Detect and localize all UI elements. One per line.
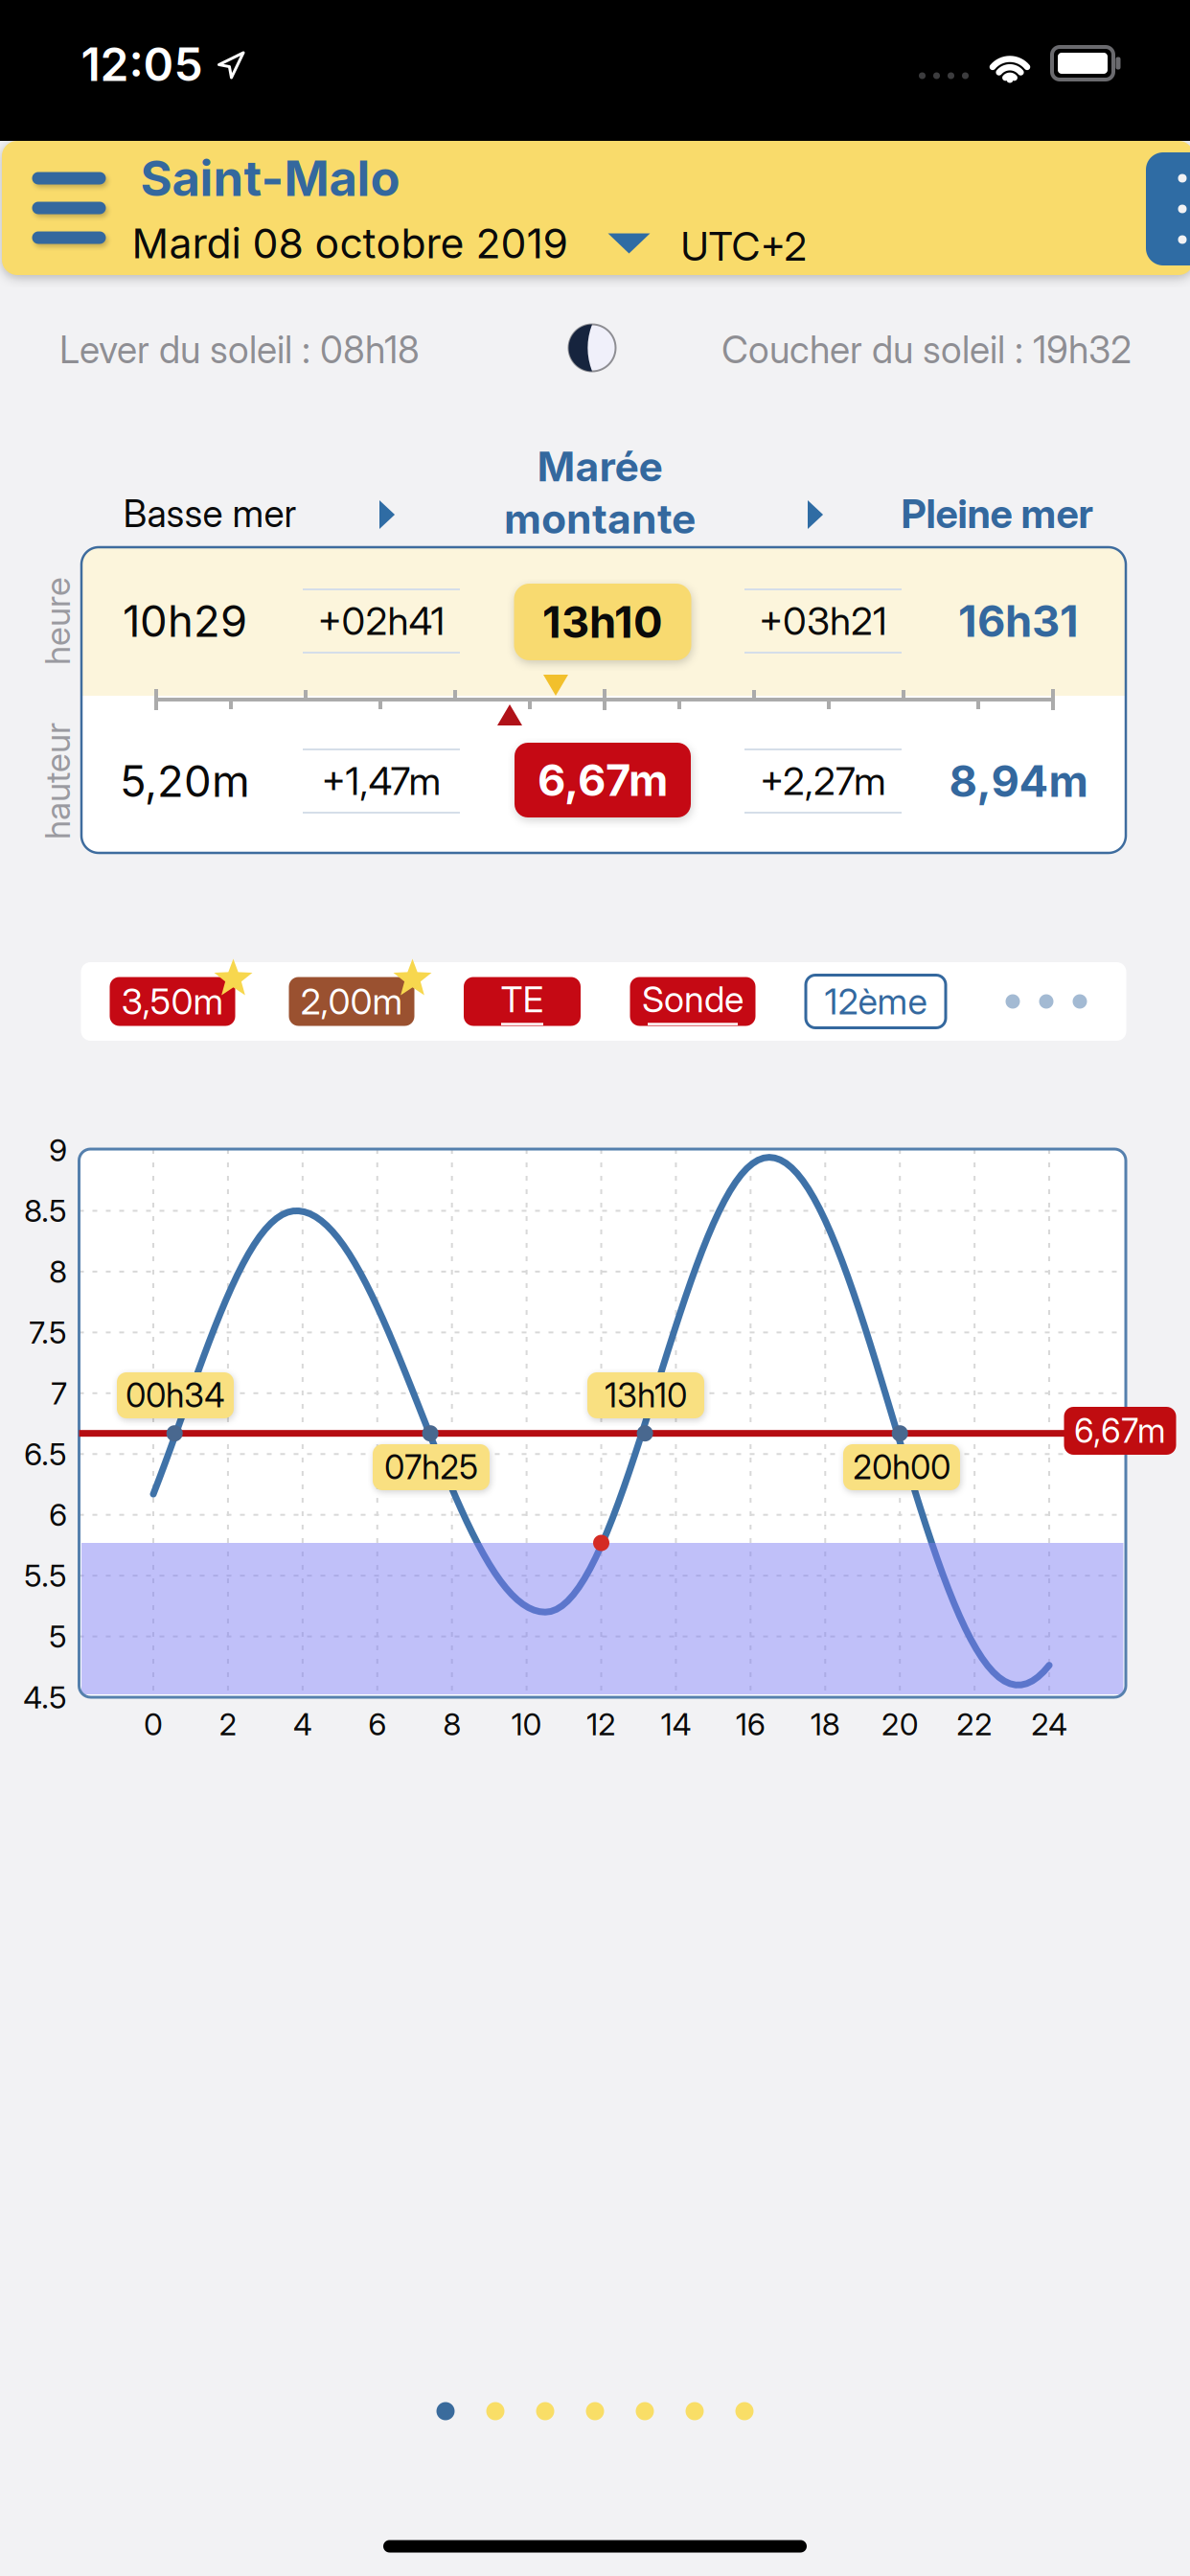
staticText: 24 xyxy=(1031,1705,1067,1743)
staticText: 4 xyxy=(293,1705,312,1743)
staticText: 6 xyxy=(368,1705,386,1743)
staticText: 8 xyxy=(49,1253,67,1290)
staticText: Basse mer xyxy=(123,491,297,536)
staticText: +03h21 xyxy=(759,598,887,644)
staticText: heure xyxy=(13,600,102,642)
staticText: 07h25 xyxy=(384,1447,478,1487)
staticText: 22 xyxy=(956,1705,993,1743)
staticText: 10h29 xyxy=(123,595,247,647)
staticText: 6.5 xyxy=(24,1435,67,1473)
staticText: 13h10 xyxy=(542,596,663,648)
staticText: Lever du soleil : 08h18 xyxy=(59,327,420,372)
staticText: 7.5 xyxy=(29,1314,67,1351)
staticText: 12 xyxy=(586,1705,616,1743)
button[interactable]: 3,50m xyxy=(110,977,235,1026)
button[interactable]: TE xyxy=(464,977,581,1026)
staticText: TE xyxy=(501,978,544,1021)
staticText: 5.5 xyxy=(24,1557,67,1594)
staticText: 12ème xyxy=(824,980,927,1023)
staticText: 9 xyxy=(49,1131,67,1168)
staticText: 8.5 xyxy=(24,1192,67,1229)
staticText: Sonde xyxy=(642,978,744,1021)
staticText: 00h34 xyxy=(126,1375,225,1415)
staticText: 4.5 xyxy=(23,1679,67,1716)
button[interactable]: Menu xyxy=(21,155,117,261)
button[interactable]: Sonde xyxy=(630,977,755,1026)
staticText: 6,67m xyxy=(538,754,668,806)
button[interactable]: Plus d'options xyxy=(1146,152,1190,265)
staticText: 0 xyxy=(144,1705,163,1743)
staticText: 5 xyxy=(49,1618,67,1655)
staticText: 5,20m xyxy=(120,755,250,807)
staticText: 20 xyxy=(881,1705,919,1743)
staticText: Coucher du soleil : 19h32 xyxy=(721,327,1132,372)
staticText: +02h41 xyxy=(318,598,445,644)
staticText: 16 xyxy=(736,1705,765,1743)
staticText: 6,67m xyxy=(1074,1411,1166,1451)
staticText: 14 xyxy=(661,1705,691,1743)
button[interactable]: Plus xyxy=(996,977,1097,1025)
staticText: 3,50m xyxy=(121,980,224,1023)
button[interactable]: 2,00m xyxy=(289,977,414,1026)
button[interactable]: 12ème xyxy=(806,975,946,1028)
staticText: Pleine mer xyxy=(901,490,1094,538)
staticText: 2,00m xyxy=(300,980,403,1023)
staticText: 2 xyxy=(219,1705,237,1743)
staticText: 20h00 xyxy=(853,1447,950,1487)
staticText: 7 xyxy=(51,1375,67,1412)
staticText: 8 xyxy=(443,1705,461,1743)
button[interactable]: Choisir la date xyxy=(132,219,650,268)
staticText: 6 xyxy=(49,1496,67,1533)
staticText: montante xyxy=(504,494,696,543)
staticText: hauteur xyxy=(0,760,116,802)
staticText: 8,94m xyxy=(949,755,1088,807)
staticText: Saint-Malo xyxy=(140,149,400,208)
staticText: 16h31 xyxy=(958,595,1079,647)
staticText: +1,47m xyxy=(321,758,441,804)
staticText: Marée xyxy=(537,442,663,491)
staticText: UTC+2 xyxy=(681,222,806,270)
staticText: 13h10 xyxy=(605,1375,687,1415)
staticText: 12:05 xyxy=(81,36,203,92)
staticText: 18 xyxy=(810,1705,840,1743)
staticText: Mardi 08 octobre 2019 xyxy=(132,219,568,268)
staticText: 10 xyxy=(511,1705,542,1743)
staticText: +2,27m xyxy=(760,758,886,804)
